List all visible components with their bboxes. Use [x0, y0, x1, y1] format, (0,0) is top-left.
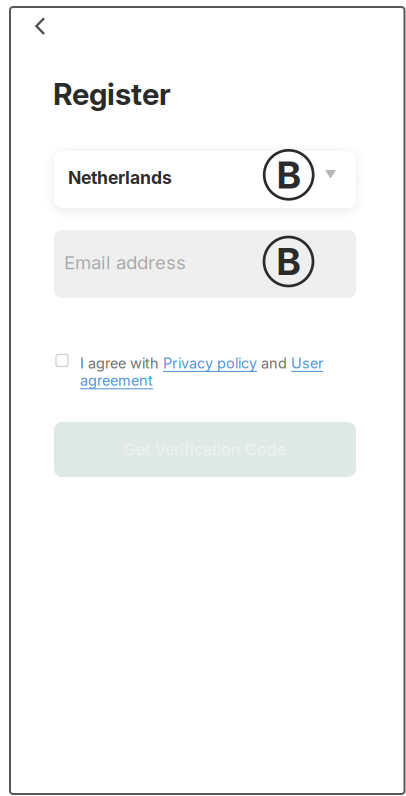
staticText: Email address: [64, 251, 186, 274]
staticText: B: [276, 239, 300, 284]
staticText: Get Verification Code: [124, 440, 286, 459]
staticText: Netherlands: [68, 167, 172, 188]
button[interactable]: Netherlands: [54, 151, 356, 208]
staticText: Register: [53, 76, 171, 112]
staticText: I agree with Privacy policy and User agr…: [80, 354, 323, 389]
button[interactable]: Back: [21, 7, 59, 45]
staticText: B: [277, 152, 301, 197]
button[interactable]: I agree: [50, 348, 74, 372]
